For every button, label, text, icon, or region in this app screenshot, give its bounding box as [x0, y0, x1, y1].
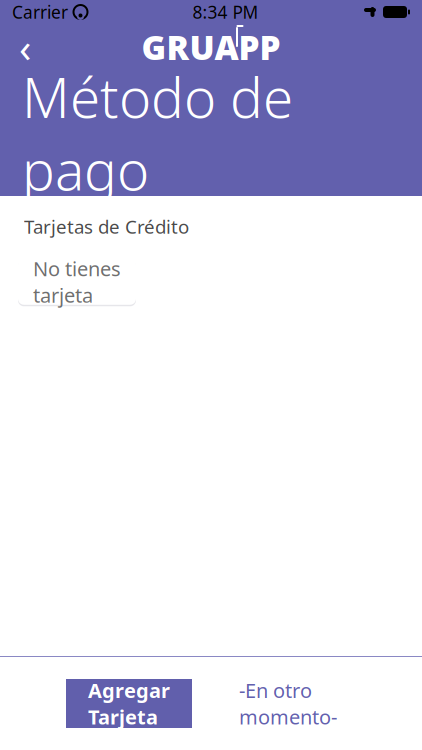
button[interactable]: Agregar Tarjeta [66, 679, 192, 728]
staticText: ‹ [19, 20, 31, 73]
staticText: No tienes tarjeta [33, 255, 121, 308]
button[interactable]: Back [0, 24, 50, 70]
staticText: Tarjetas de Crédito [24, 214, 189, 239]
staticText: 8:34 PM [192, 0, 258, 23]
staticText: Carrier [12, 0, 68, 23]
staticText: Agregar Tarjeta [88, 677, 170, 730]
staticText: Método de pago [22, 60, 293, 206]
button[interactable]: -En otro momento- [208, 679, 368, 728]
staticText: GRUAPP [141, 25, 280, 69]
staticText: -En otro momento- [239, 677, 337, 730]
